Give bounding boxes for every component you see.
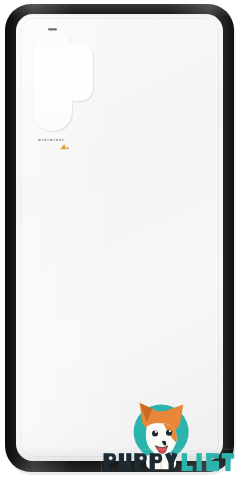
button[interactable]: Clear phone case product photo [0,0,241,480]
